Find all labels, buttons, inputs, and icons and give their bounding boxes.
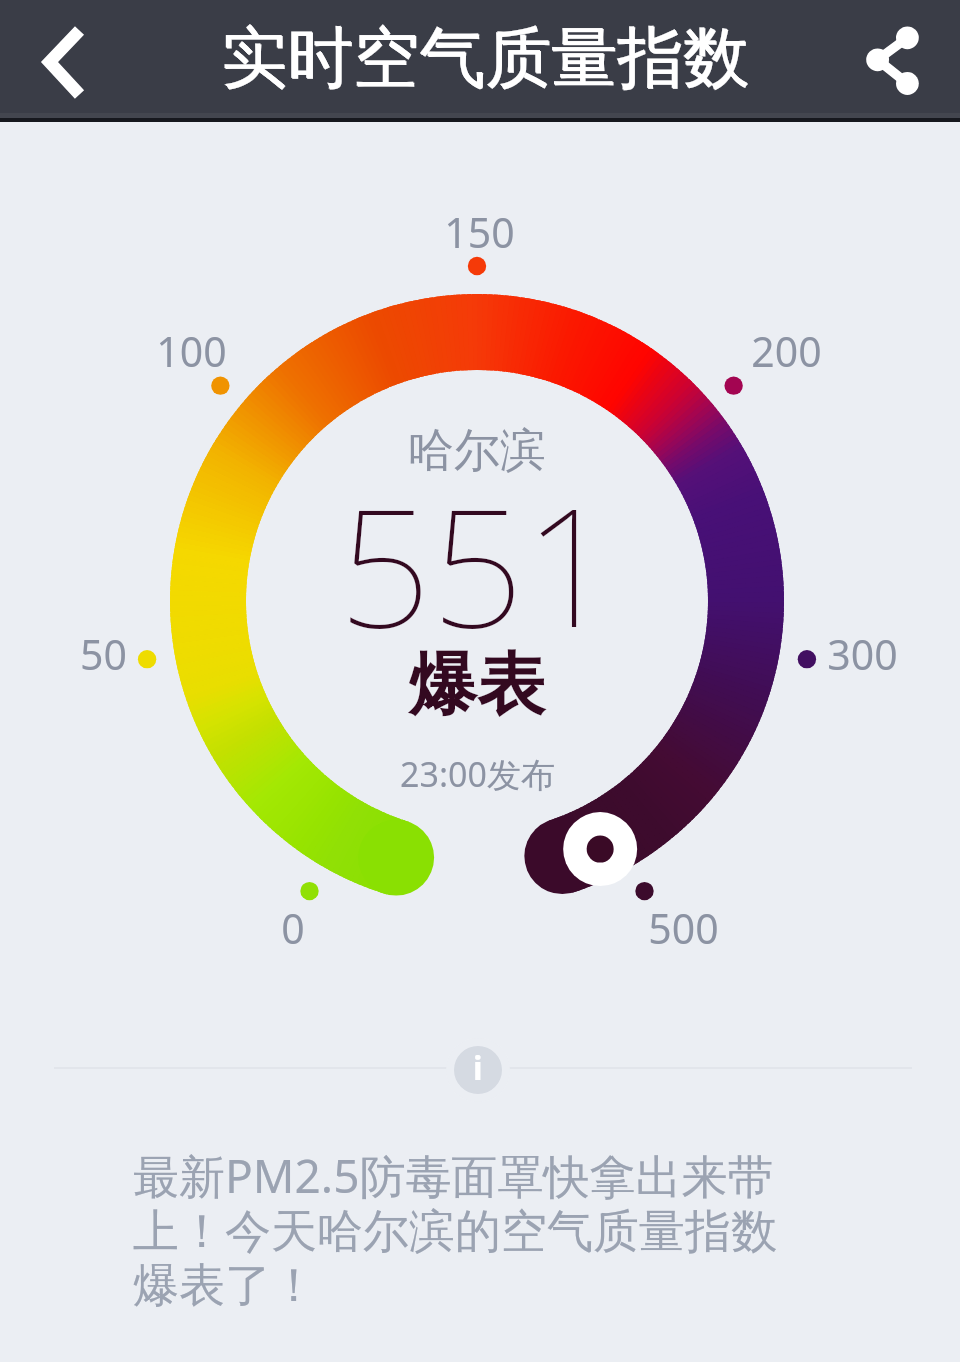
staticText: 150 xyxy=(444,204,515,260)
button[interactable]: Info xyxy=(446,1038,510,1102)
staticText: 0 xyxy=(281,900,305,956)
staticText: 551 xyxy=(338,453,617,675)
staticText: 100 xyxy=(156,323,227,379)
staticText: i xyxy=(473,1046,483,1090)
staticText: 500 xyxy=(648,900,719,956)
staticText: 50 xyxy=(80,626,127,682)
staticText: 200 xyxy=(751,323,822,379)
staticText: 实时空气质量指数 xyxy=(222,17,750,100)
staticText: 最新PM2.5防毒面罩快拿出来带上！今天哈尔滨的空气质量指数爆表了！ xyxy=(133,1144,793,1315)
staticText: 实时空气质量指数 xyxy=(221,16,749,99)
staticText: 300 xyxy=(827,626,898,682)
staticText: 哈尔滨 xyxy=(408,422,546,480)
button[interactable]: Back xyxy=(0,3,122,120)
staticText: 23:00发布 xyxy=(400,751,555,797)
button[interactable]: Share xyxy=(838,3,960,120)
staticText: 爆表 xyxy=(409,643,545,729)
